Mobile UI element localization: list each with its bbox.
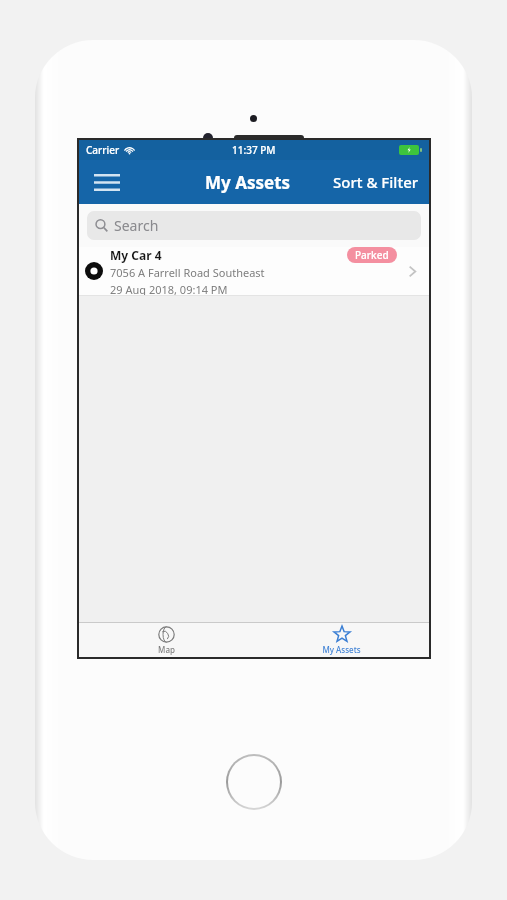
staticText: 29 Aug 2018, 09:14 PM: [110, 282, 228, 295]
staticText: Map: [158, 644, 175, 655]
button[interactable]: Sort & Filter: [329, 164, 423, 200]
staticText: My Assets: [205, 171, 291, 194]
staticText: My Assets: [322, 644, 361, 655]
button[interactable]: My Car 4: [79, 247, 429, 295]
staticText: Carrier: [86, 143, 120, 157]
staticText: Search: [114, 216, 159, 235]
staticText: Sort & Filter: [333, 172, 419, 192]
staticText: My Car 4: [110, 247, 162, 263]
button[interactable]: Menu: [87, 162, 127, 202]
button[interactable]: Map: [79, 623, 254, 657]
button[interactable]: My Assets: [254, 623, 429, 657]
button[interactable]: Home: [228, 756, 280, 808]
staticText: 11:37 PM: [232, 143, 276, 157]
staticText: 7056 A Farrell Road Southeast: [110, 265, 265, 280]
button[interactable]: Search: [87, 211, 421, 240]
staticText: Parked: [355, 248, 389, 262]
